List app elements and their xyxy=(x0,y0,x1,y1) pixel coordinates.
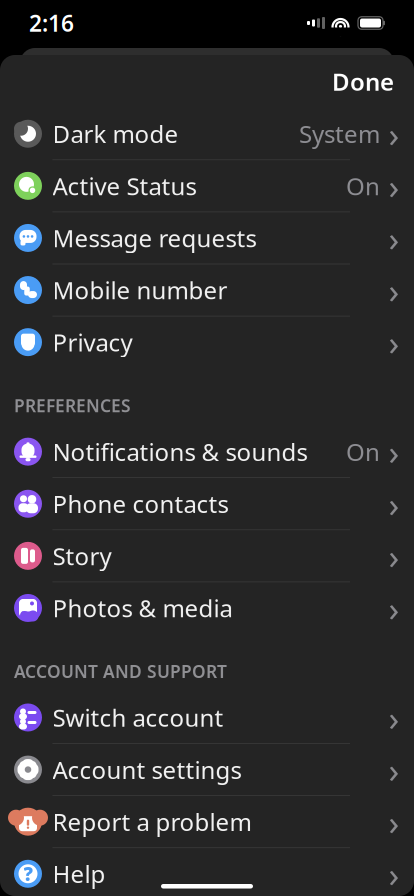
staticText: › xyxy=(388,215,399,261)
staticText: › xyxy=(388,533,399,579)
staticText: Active Status xyxy=(52,170,196,202)
staticText: ? xyxy=(23,861,32,886)
staticText: ACCOUNT AND SUPPORT xyxy=(14,660,227,683)
staticText: › xyxy=(388,747,399,793)
staticText: Story xyxy=(52,540,111,572)
staticText: PREFERENCES xyxy=(14,394,131,417)
staticText: On xyxy=(346,436,380,468)
button[interactable]: ? xyxy=(0,848,414,896)
staticText: Switch account xyxy=(52,701,223,733)
staticText: Report a problem xyxy=(52,806,251,838)
staticText: › xyxy=(388,851,399,896)
staticText: › xyxy=(388,429,399,475)
staticText: System xyxy=(299,118,380,150)
staticText: › xyxy=(388,481,399,527)
staticText: › xyxy=(388,585,399,631)
staticText: Privacy xyxy=(52,326,132,358)
button[interactable]: Phone contacts xyxy=(0,478,414,530)
button[interactable]: Notifications & sounds xyxy=(0,426,414,478)
button[interactable]: Dark mode xyxy=(0,108,414,160)
button[interactable]: Done xyxy=(324,58,402,105)
staticText: Account settings xyxy=(52,754,241,785)
staticText: Mobile number xyxy=(52,274,227,306)
staticText: › xyxy=(388,163,399,209)
staticText: › xyxy=(388,319,399,365)
staticText: Notifications & sounds xyxy=(52,436,307,468)
staticText: On xyxy=(346,170,380,202)
staticText: 2:16 xyxy=(29,8,74,38)
button[interactable]: Photos & media xyxy=(0,582,414,634)
staticText: › xyxy=(388,694,399,740)
staticText: Message requests xyxy=(52,222,256,254)
button[interactable]: Mobile number xyxy=(0,264,414,316)
button[interactable]: Privacy xyxy=(0,316,414,368)
button[interactable]: Report a problem xyxy=(0,796,414,848)
staticText: Help xyxy=(52,858,105,890)
button[interactable]: Active Status xyxy=(0,160,414,212)
staticText: Dark mode xyxy=(52,118,178,150)
button[interactable]: Account settings xyxy=(0,744,414,796)
button[interactable]: Message requests xyxy=(0,212,414,264)
staticText: Phone contacts xyxy=(52,488,228,520)
staticText: Photos & media xyxy=(52,592,232,624)
staticText: › xyxy=(388,111,399,157)
staticText: › xyxy=(388,267,399,313)
staticText: › xyxy=(388,799,399,845)
button[interactable]: Story xyxy=(0,530,414,582)
staticText: Done xyxy=(332,66,394,97)
button[interactable]: Switch account xyxy=(0,692,414,744)
